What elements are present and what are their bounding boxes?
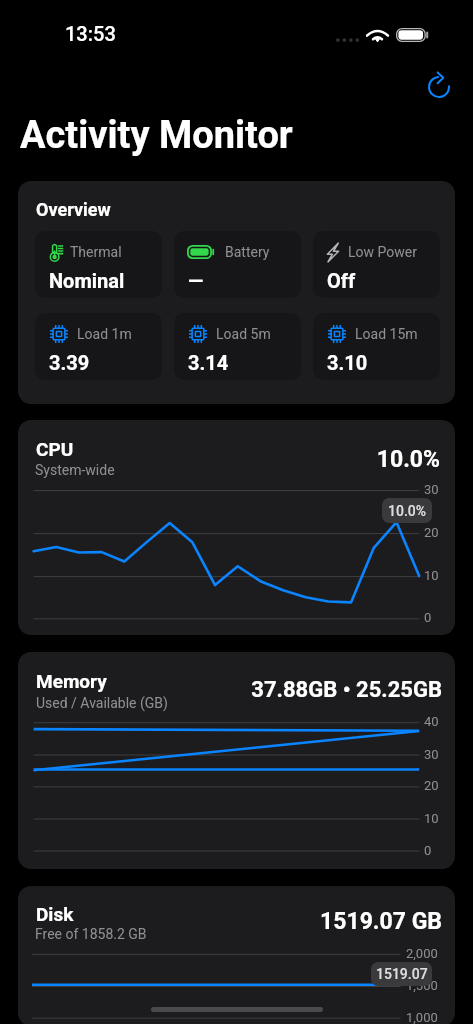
button[interactable]: Battery [174,231,301,298]
staticText: Low Power [348,244,417,260]
staticText: Load 15m [355,326,418,342]
staticText: 10.0% [388,503,427,519]
staticText: Load 1m [77,326,132,342]
staticText: Memory [36,670,107,692]
staticText: 3.39 [49,351,90,374]
button[interactable]: Low Power [313,231,440,298]
staticText: 1519.07 GB [248,908,442,935]
staticText: 20 [424,525,439,540]
staticText: 10 [424,568,439,583]
button[interactable]: Load 1m [35,313,162,380]
staticText: 10 [424,811,439,826]
button[interactable]: Refresh [417,65,461,109]
button[interactable]: Thermal [35,231,162,298]
staticText: Overview [36,199,111,220]
staticText: Activity Monitor [20,113,293,158]
staticText: Thermal [70,244,122,260]
button[interactable]: Memory [18,652,455,869]
staticText: Used / Available (GB) [36,695,168,711]
staticText: 20 [424,778,439,793]
staticText: 1,500 [406,978,438,993]
staticText: 1,000 [406,1010,438,1024]
staticText: Off [327,269,356,292]
staticText: 1519.07 [376,966,428,982]
staticText: 30 [424,482,439,497]
staticText: Battery [225,244,270,260]
button[interactable]: Load 5m [174,313,301,380]
staticText: 0 [424,843,432,858]
staticText: — [188,269,204,292]
staticText: 40 [424,714,439,729]
staticText: Disk [36,903,74,925]
staticText: 10.0% [255,446,440,473]
staticText: 0 [424,610,432,625]
button[interactable]: Load 15m [313,313,440,380]
staticText: System-wide [35,462,115,478]
staticText: 2,000 [406,946,438,961]
button[interactable]: Overview [18,181,455,404]
staticText: Load 5m [216,326,271,342]
staticText: 37.88GB • 25.25GB [218,677,442,703]
staticText: 3.10 [327,351,368,374]
staticText: 3.14 [188,351,229,374]
staticText: CPU [36,438,74,460]
staticText: 13:53 [65,22,116,45]
button[interactable]: CPU [18,420,455,635]
staticText: Free of 1858.2 GB [35,926,147,942]
button[interactable]: Disk [18,886,455,1024]
staticText: 30 [424,747,439,762]
staticText: Nominal [49,269,125,292]
